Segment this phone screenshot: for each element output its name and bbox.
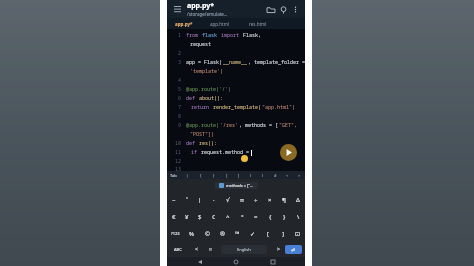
staticText: app.py* — [175, 21, 193, 27]
button[interactable]: Δ — [291, 191, 305, 208]
button[interactable]: English — [221, 245, 267, 254]
staticText: Flask, render_template, — [243, 32, 305, 39]
staticText: π — [240, 196, 244, 204]
staticText: ⊡ — [295, 230, 301, 237]
button[interactable]: € — [167, 208, 180, 225]
button[interactable]: ~ — [167, 191, 180, 208]
button[interactable]: π — [235, 191, 249, 208]
staticText: 10 — [175, 140, 182, 147]
button[interactable]: Menu — [171, 3, 183, 15]
staticText: res.html — [249, 21, 267, 27]
button[interactable]: | — [193, 191, 207, 208]
button[interactable]: } — [207, 171, 220, 179]
staticText: request.method = — [201, 149, 250, 156]
button[interactable]: = — [249, 208, 263, 225]
staticText: € — [172, 213, 176, 221]
button[interactable]: [ — [220, 171, 233, 179]
button[interactable]: ] — [233, 171, 245, 179]
staticText: ¥ — [185, 213, 189, 221]
button[interactable]: ^ — [221, 208, 235, 225]
button[interactable]: \ — [291, 208, 305, 225]
staticText: if — [191, 149, 201, 156]
button[interactable]: ⊡ — [290, 225, 305, 242]
button[interactable]: · — [207, 191, 221, 208]
button[interactable]: ™ — [230, 225, 245, 242]
staticText: > — [277, 246, 280, 253]
button[interactable]: Enter — [285, 245, 302, 254]
staticText: ⌗ — [209, 247, 212, 252]
button[interactable]: ✓ — [245, 225, 260, 242]
button[interactable]: × — [263, 191, 277, 208]
button[interactable]: res.html — [239, 18, 277, 29]
staticText: ÷ — [254, 196, 258, 204]
staticText: English — [237, 247, 251, 252]
button[interactable]: Next — [271, 242, 285, 257]
staticText: 13 — [175, 166, 182, 171]
button[interactable]: ® — [215, 225, 230, 242]
button[interactable]: Back — [196, 258, 204, 266]
staticText: from — [186, 32, 202, 39]
staticText: { — [200, 173, 202, 178]
staticText: Δ — [296, 196, 300, 204]
staticText: "POST"]) — [190, 131, 215, 138]
button[interactable]: app.py* — [167, 18, 201, 29]
staticText: ( — [250, 173, 252, 178]
staticText: "app.html") — [262, 104, 296, 111]
button[interactable]: ° — [235, 208, 249, 225]
button[interactable]: ABC — [167, 242, 189, 257]
button[interactable]: > — [293, 171, 305, 179]
button[interactable]: © — [199, 225, 215, 242]
staticText: · — [213, 196, 215, 204]
button[interactable]: Play — [280, 144, 297, 161]
button[interactable]: ) — [257, 171, 269, 179]
button[interactable]: ( — [245, 171, 257, 179]
staticText: © — [205, 230, 210, 238]
button[interactable]: app.html — [201, 18, 239, 29]
button[interactable]: Cursor handle — [241, 155, 248, 162]
button[interactable]: ¢ — [207, 208, 221, 225]
staticText: | — [198, 196, 202, 204]
staticText: ™ — [235, 230, 240, 238]
staticText: 12 — [175, 158, 182, 165]
button[interactable]: Open folder — [264, 3, 277, 16]
button[interactable]: ¥ — [180, 208, 193, 225]
button[interactable]: Tab — [170, 173, 177, 178]
button[interactable]: { — [194, 171, 207, 179]
button[interactable]: Home — [232, 258, 240, 266]
button[interactable]: Search — [277, 3, 290, 16]
button[interactable]: √ — [221, 191, 235, 208]
staticText: < — [195, 246, 198, 253]
staticText: | — [186, 173, 189, 178]
button[interactable]: Previous — [189, 242, 203, 257]
button[interactable]: Recents — [269, 258, 277, 266]
staticText: 11 — [175, 149, 182, 156]
button[interactable]: ?123 — [167, 225, 183, 242]
button[interactable]: ÷ — [249, 191, 263, 208]
staticText: ABC — [174, 247, 182, 252]
staticText: 6 — [178, 95, 182, 102]
button[interactable]: ] — [275, 225, 290, 242]
button[interactable]: % — [183, 225, 199, 242]
staticText: 3 — [178, 59, 182, 66]
button[interactable]: # — [269, 171, 281, 179]
staticText: $ — [198, 213, 202, 221]
staticText: app.py* — [187, 1, 215, 11]
button[interactable]: < — [281, 171, 293, 179]
button[interactable]: Emoji — [203, 242, 217, 257]
button[interactable]: ˚ — [180, 191, 193, 208]
button[interactable]: methods = ["… — [215, 182, 258, 189]
button[interactable]: $ — [193, 208, 207, 225]
button[interactable]: [ — [260, 225, 275, 242]
staticText: flask — [202, 32, 221, 39]
button[interactable]: More options — [290, 4, 301, 15]
button[interactable]: { — [263, 208, 277, 225]
staticText: ° — [241, 213, 244, 221]
staticText: 9 — [178, 122, 182, 129]
staticText: = — [254, 213, 258, 221]
staticText: # — [274, 173, 277, 178]
button[interactable]: } — [277, 208, 291, 225]
staticText: < — [286, 173, 289, 178]
button[interactable]: ¶ — [277, 191, 291, 208]
staticText: { — [269, 213, 272, 221]
button[interactable]: | — [181, 171, 194, 179]
